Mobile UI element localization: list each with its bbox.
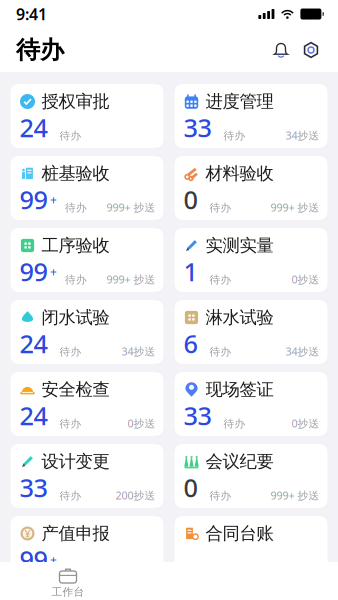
staticText: 待办 [209,489,231,502]
staticText: 材料验收 [205,163,273,184]
staticText: 授权审批 [41,91,109,112]
staticText: 闭水试验 [41,307,109,328]
staticText: 0 [183,183,197,216]
staticText: 1 [183,255,197,288]
staticText: 999+ 抄送 [270,200,319,214]
staticText: 0抄送 [127,416,155,430]
staticText: 工序验收 [41,235,109,256]
staticText: 设计变更 [41,451,109,472]
staticText: 0抄送 [291,272,319,286]
staticText: 34抄送 [285,344,319,358]
staticText: 待办 [209,201,231,214]
button[interactable]: 合同台账 [174,516,327,580]
staticText: 待办 [209,273,231,286]
staticText: 待办 [65,561,87,574]
staticText: 999+ 抄送 [106,200,155,214]
staticText: 6 [183,327,197,360]
staticText: 安全检查 [41,379,109,400]
staticText: + [50,264,57,280]
button[interactable]: 授权审批 [10,84,163,148]
staticText: ¥ [24,526,30,541]
staticText: 33 [183,399,211,432]
staticText: + [50,192,57,208]
staticText: 34抄送 [121,344,155,358]
button[interactable]: 现场签证 [174,372,327,436]
staticText: 会议纪要 [205,451,273,472]
staticText: 合同台账 [205,523,273,544]
staticText: 999+ 抄送 [270,488,319,502]
staticText: 待办 [59,345,81,358]
button[interactable]: 桩基验收 [10,156,163,220]
staticText: 待办 [16,35,64,65]
staticText: 待办 [59,129,81,142]
staticText: 待办 [65,201,87,214]
staticText: 24 [19,111,47,144]
button[interactable]: 工作台 [12,566,124,600]
staticText: 34抄送 [285,128,319,142]
button[interactable]: ¥ [10,516,163,580]
staticText: 0 [183,471,197,504]
staticText: 24 [19,327,47,360]
staticText: 200抄送 [115,488,155,502]
staticText: 待办 [223,417,245,430]
staticText: 33 [19,471,47,504]
button[interactable]: 闭水试验 [10,300,163,364]
staticText: 待办 [223,129,245,142]
staticText: 待办 [59,417,81,430]
staticText: 工作台 [51,585,84,599]
button[interactable]: 工序验收 [10,228,163,292]
staticText: 99 [19,183,47,216]
button[interactable]: 进度管理 [174,84,327,148]
staticText: 产值申报 [41,523,109,544]
button[interactable]: 安全检查 [10,372,163,436]
staticText: 99 [19,255,47,288]
staticText: 桩基验收 [41,163,109,184]
staticText: 待办 [209,345,231,358]
button[interactable]: 会议纪要 [174,444,327,508]
staticText: 淋水试验 [205,307,273,328]
staticText: 24 [19,399,47,432]
button[interactable]: 实测实量 [174,228,327,292]
staticText: 待办 [65,273,87,286]
staticText: 33 [183,111,211,144]
button[interactable]: 材料验收 [174,156,327,220]
staticText: 进度管理 [205,91,273,112]
button[interactable]: 设计变更 [10,444,163,508]
button[interactable]: 通知 [266,35,296,65]
staticText: 现场签证 [205,379,273,400]
staticText: 待办 [59,489,81,502]
button[interactable]: 设置 [296,35,326,65]
staticText: 0抄送 [291,416,319,430]
staticText: 9:41 [16,3,47,25]
staticText: 99 [19,543,47,576]
staticText: + [50,552,57,568]
staticText: 999+ 抄送 [106,272,155,286]
button[interactable]: 淋水试验 [174,300,327,364]
staticText: 实测实量 [205,235,273,256]
